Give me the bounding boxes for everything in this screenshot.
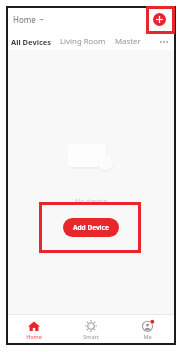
button[interactable]: Living Room — [60, 36, 106, 47]
button[interactable]: Master — [115, 36, 141, 47]
staticText: Smart — [83, 333, 99, 340]
staticText: Me — [143, 333, 152, 340]
staticText: Add Device — [73, 223, 109, 232]
staticText: No device — [75, 197, 108, 207]
button[interactable]: Smart — [62, 315, 119, 345]
button[interactable]: Me — [119, 315, 176, 345]
button[interactable]: Add Device — [63, 218, 119, 237]
button[interactable]: More — [157, 35, 171, 49]
button[interactable]: All Devices — [11, 37, 52, 47]
button[interactable]: Home — [11, 12, 46, 27]
button[interactable]: Home — [6, 315, 62, 345]
staticText: Home — [26, 333, 42, 340]
staticText: Home — [13, 14, 36, 25]
button[interactable]: Add device — [153, 13, 166, 26]
